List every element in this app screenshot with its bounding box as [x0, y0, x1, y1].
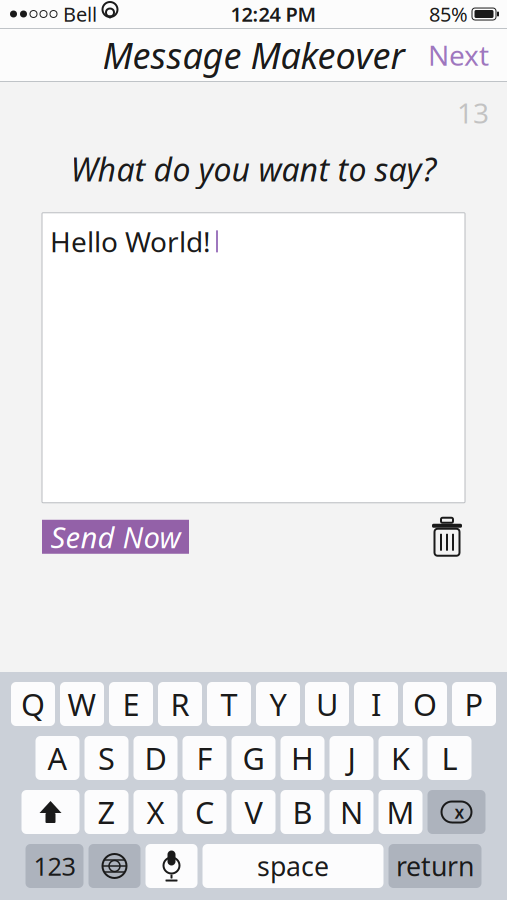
button[interactable]: Y — [256, 682, 300, 726]
button[interactable]: D — [133, 736, 177, 780]
button[interactable]: return — [388, 844, 481, 888]
staticText: I — [371, 684, 381, 724]
staticText: N — [340, 792, 363, 832]
button[interactable]: B — [280, 790, 324, 834]
staticText: Y — [269, 684, 286, 724]
staticText: 13 — [457, 94, 489, 131]
staticText: S — [98, 738, 115, 778]
button[interactable]: Z — [84, 790, 128, 834]
button[interactable]: Dictation — [145, 844, 197, 888]
button[interactable]: T — [207, 682, 251, 726]
button[interactable]: O — [403, 682, 447, 726]
staticText: L — [441, 738, 457, 778]
staticText: 85% — [429, 1, 468, 27]
button[interactable]: X — [133, 790, 177, 834]
staticText: Message Makeover — [102, 30, 404, 79]
button[interactable]: E — [109, 682, 153, 726]
staticText: W — [67, 684, 96, 724]
button[interactable]: I — [354, 682, 398, 726]
staticText: O — [413, 684, 437, 724]
button[interactable]: 123 — [25, 844, 83, 888]
staticText: X — [146, 792, 164, 832]
button[interactable]: K — [378, 736, 422, 780]
button[interactable]: C — [182, 790, 226, 834]
button[interactable]: F — [182, 736, 226, 780]
staticText: V — [244, 792, 262, 832]
staticText: space — [257, 848, 329, 884]
button[interactable]: P — [452, 682, 496, 726]
staticText: H — [291, 738, 314, 778]
staticText: M — [386, 792, 414, 832]
staticText: C — [195, 792, 214, 832]
button[interactable]: N — [329, 790, 373, 834]
button[interactable]: Q — [11, 682, 55, 726]
button[interactable]: Shift — [21, 790, 79, 834]
button[interactable]: A — [35, 736, 79, 780]
button[interactable]: Delete — [429, 517, 465, 557]
button[interactable]: Delete — [427, 790, 485, 834]
button[interactable]: M — [378, 790, 422, 834]
staticText: x — [454, 800, 464, 823]
staticText: 123 — [33, 849, 75, 883]
staticText: B — [292, 792, 312, 832]
staticText: return — [396, 848, 474, 884]
staticText: P — [464, 684, 483, 724]
staticText: J — [347, 738, 355, 778]
staticText: T — [220, 684, 237, 724]
button[interactable]: V — [231, 790, 275, 834]
button[interactable]: G — [231, 736, 275, 780]
button[interactable]: S — [84, 736, 128, 780]
button[interactable]: U — [305, 682, 349, 726]
staticText: A — [47, 738, 67, 778]
button[interactable]: Send Now — [42, 520, 189, 554]
staticText: U — [316, 684, 338, 724]
button[interactable]: Next — [416, 28, 501, 82]
button[interactable]: H — [280, 736, 324, 780]
button[interactable]: Next keyboard — [88, 844, 140, 888]
staticText: Z — [97, 792, 115, 832]
button[interactable]: space — [202, 844, 383, 888]
button[interactable]: R — [158, 682, 202, 726]
button[interactable]: L — [427, 736, 471, 780]
staticText: Q — [21, 684, 45, 724]
button[interactable]: W — [60, 682, 104, 726]
staticText: E — [122, 684, 139, 724]
button[interactable]: J — [329, 736, 373, 780]
staticText: R — [170, 684, 189, 724]
staticText: Next — [428, 36, 489, 74]
staticText: Hello World! — [50, 223, 211, 260]
staticText: Bell — [63, 1, 97, 27]
staticText: What do you want to say? — [70, 147, 436, 191]
staticText: D — [144, 738, 166, 778]
staticText: K — [391, 738, 410, 778]
staticText: 12:24 PM — [230, 1, 316, 27]
staticText: G — [242, 738, 264, 778]
staticText: F — [196, 738, 212, 778]
staticText: Send Now — [50, 517, 180, 557]
